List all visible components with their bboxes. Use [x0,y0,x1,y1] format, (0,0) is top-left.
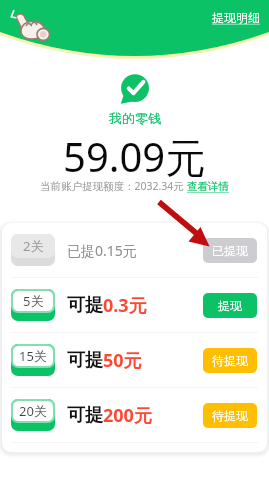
button[interactable]: 已提现 [203,238,257,263]
staticText: 15关 [19,347,47,365]
staticText: 查看详情 [187,180,229,193]
button[interactable]: 2关 [2,223,267,277]
staticText: 5关 [23,292,44,310]
staticText: 59.09元 [63,129,206,184]
button[interactable]: 待提现 [203,348,257,373]
staticText: 0.3元 [103,293,147,318]
button[interactable]: 20关 [2,388,267,442]
staticText: 可提 [67,349,103,372]
other: Tap hint [8,7,58,41]
staticText: 提现明细 [212,10,260,25]
button[interactable]: 待提现 [203,403,257,428]
staticText: 200元 [103,403,152,428]
staticText: 已提0.15元 [67,241,137,260]
staticText: 待提现 [212,408,248,423]
staticText: 待提现 [212,353,248,368]
staticText: 当前账户提现额度：2032.34元 [40,179,187,193]
staticText: 50元 [103,348,142,373]
staticText: 已提现 [212,243,248,258]
button[interactable]: 15关 [2,333,267,387]
button[interactable]: 查看详情 [187,180,229,193]
staticText: 提现 [218,298,242,313]
staticText: 可提 [67,294,103,317]
staticText: 可提 [67,404,103,427]
staticText: 我的零钱 [109,110,161,126]
staticText: 2关 [23,237,44,255]
button[interactable]: 5关 [2,278,267,332]
staticText: 20关 [19,402,47,420]
button[interactable]: 提现明细 [203,5,269,30]
button[interactable]: 提现 [203,293,257,318]
